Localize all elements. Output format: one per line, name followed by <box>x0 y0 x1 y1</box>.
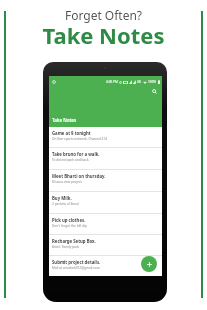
staticText: Buy Milk. <box>52 195 72 201</box>
staticText: 100% <box>148 80 157 84</box>
button[interactable]: Meet Bharti on thursday. <box>49 170 162 192</box>
staticText: Recharge Setup Box. <box>52 238 96 244</box>
button[interactable]: Buy Milk. <box>49 192 162 214</box>
staticText: Discuss new project. <box>52 180 83 184</box>
button[interactable]: Pick up clothes. <box>49 214 162 235</box>
staticText: Submit project details. <box>52 259 101 265</box>
staticText: Game at 9 tonight <box>52 130 91 136</box>
staticText: Airtel. Family pack <box>52 245 80 249</box>
staticText: Take bruno for a walk. <box>52 151 100 157</box>
staticText: Take Notes <box>52 117 77 123</box>
button[interactable]: Search <box>150 87 159 96</box>
staticText: 2 packets of Amul <box>52 202 79 206</box>
button[interactable]: Take bruno for a walk. <box>49 148 162 170</box>
button[interactable]: Add note <box>141 256 157 272</box>
staticText: Mail at anurbah012@gmail.com <box>52 266 100 270</box>
staticText: To district park and back. <box>52 158 90 162</box>
button[interactable]: Game at 9 tonight <box>49 127 162 148</box>
staticText: Meet Bharti on thursday. <box>52 173 106 179</box>
staticText: Pick up clothes. <box>52 217 86 223</box>
staticText: Take Notes <box>0 20 207 50</box>
staticText: 4:05 PM <box>106 80 118 84</box>
staticText: Don't forget the bill slip <box>52 224 88 228</box>
staticText: On Star sports network. Channel 414 <box>52 137 108 141</box>
staticText: 4G <box>137 80 142 84</box>
staticText: Forget Often? <box>0 7 207 23</box>
button[interactable]: Submit project details. <box>49 256 162 276</box>
button[interactable]: Recharge Setup Box. <box>49 235 162 256</box>
